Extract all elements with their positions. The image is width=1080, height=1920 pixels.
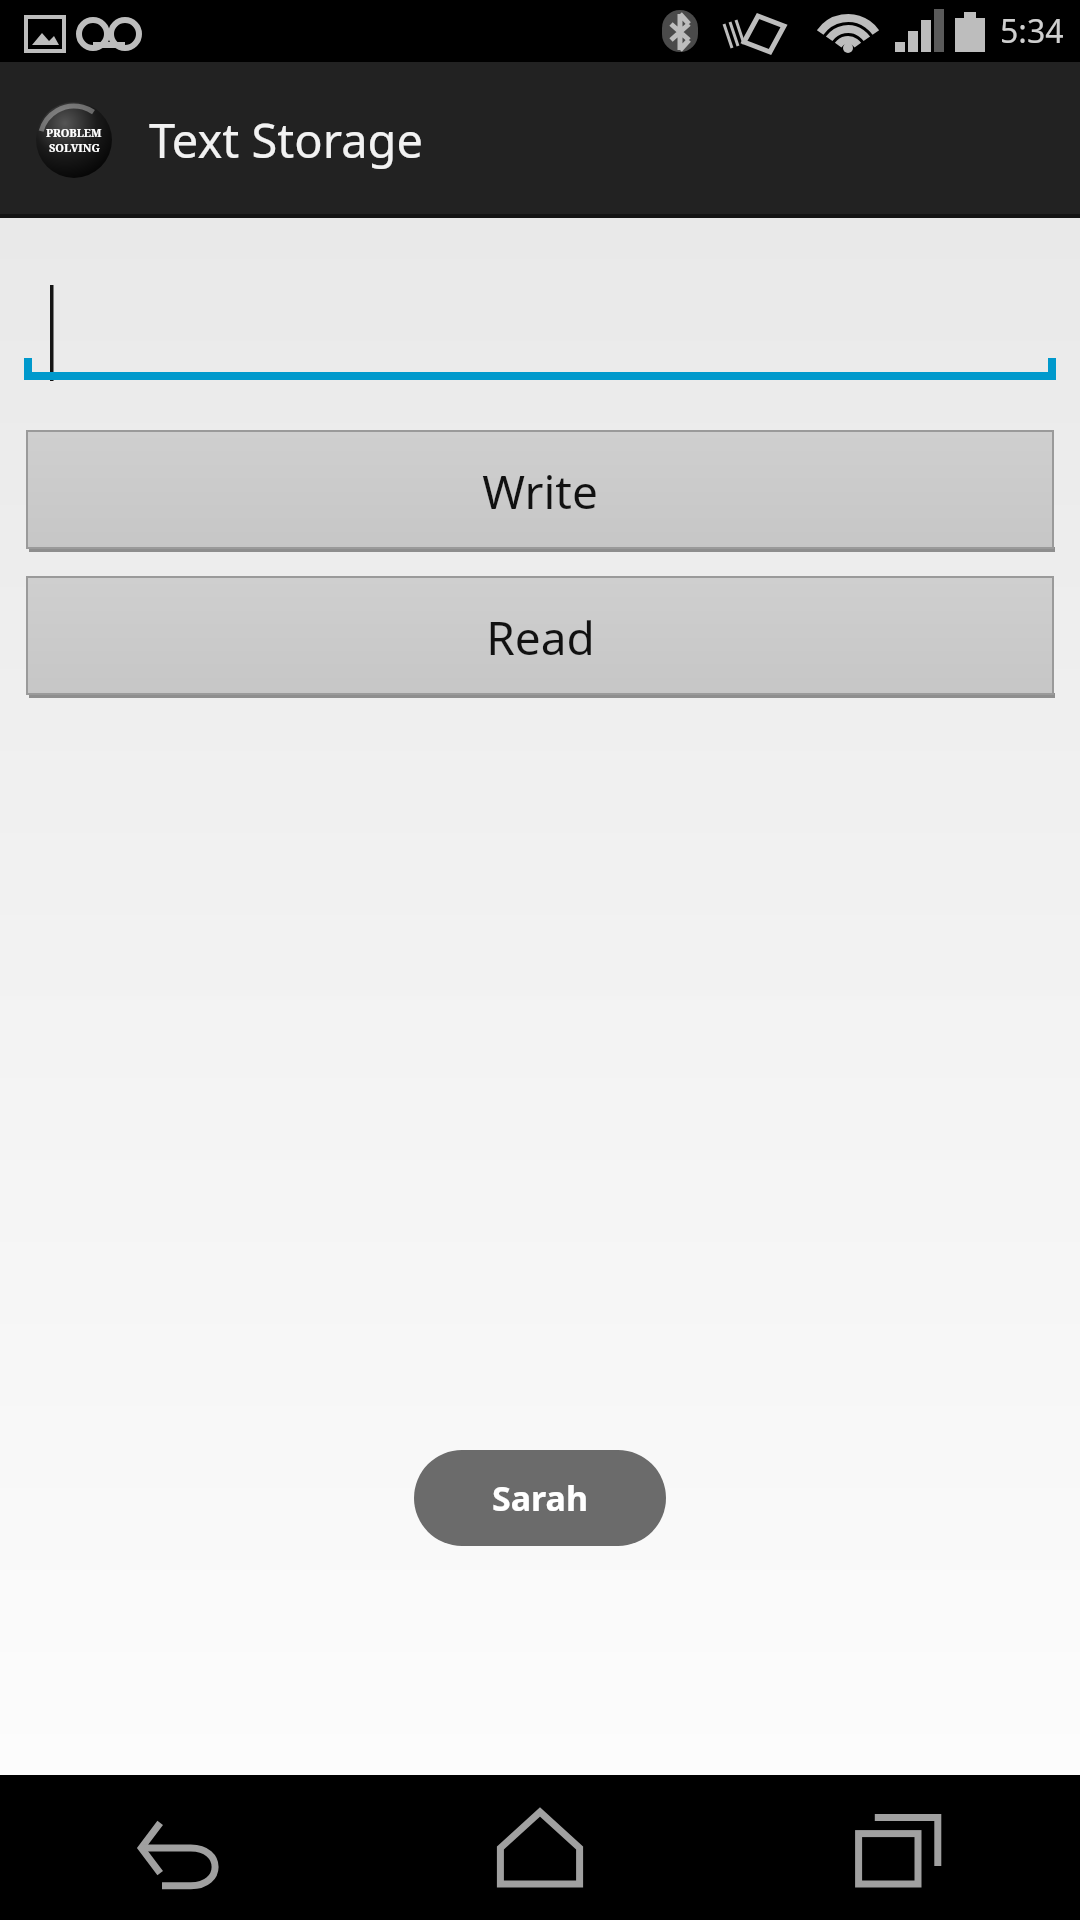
button[interactable]: Read (27, 577, 1053, 698)
button[interactable]: Write (27, 431, 1053, 552)
button[interactable]: Home (360, 1775, 720, 1920)
staticText: SOLVING (49, 140, 100, 155)
button[interactable]: Back (0, 1775, 360, 1920)
staticText: PROBLEM (46, 125, 102, 140)
button[interactable]: Recents (720, 1775, 1080, 1920)
staticText: 5:34 (1000, 9, 1064, 53)
staticText: Read (486, 606, 595, 669)
staticText: Text Storage (149, 108, 423, 172)
staticText: Sarah (492, 1475, 589, 1521)
button[interactable]: App icon (36, 102, 112, 178)
staticText: Write (482, 460, 598, 523)
button[interactable]: Sarah (414, 1450, 666, 1546)
button[interactable] (24, 253, 1056, 380)
